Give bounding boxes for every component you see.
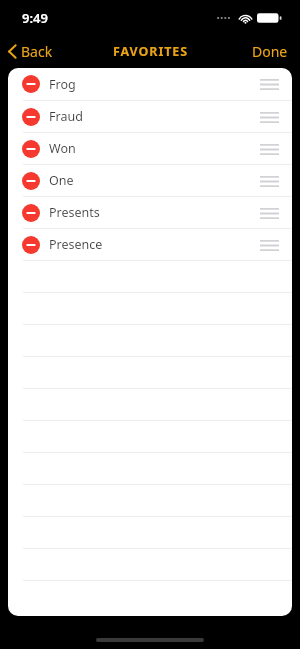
staticText: 9:49 (22, 9, 48, 27)
staticText: One (49, 172, 74, 189)
staticText: Done (252, 42, 288, 61)
staticText: Presents (49, 204, 100, 221)
button[interactable]: Remove Presence (22, 236, 40, 254)
button[interactable]: Reorder Presents (255, 203, 283, 223)
button[interactable]: Reorder Won (255, 139, 283, 159)
button[interactable]: Remove Presents (22, 204, 40, 222)
button[interactable]: Remove Frog (22, 75, 40, 93)
button[interactable]: Reorder Presence (255, 235, 283, 255)
staticText: Frog (49, 76, 76, 93)
button[interactable]: Remove Won (22, 140, 40, 158)
button[interactable]: Remove One (8, 165, 292, 196)
button[interactable]: Remove Fraud (22, 108, 40, 126)
button[interactable]: Remove Won (8, 133, 292, 164)
button[interactable]: Reorder Fraud (255, 107, 283, 127)
staticText: FAVORITES (113, 43, 188, 60)
staticText: Presence (49, 236, 103, 253)
button[interactable]: Remove One (22, 172, 40, 190)
staticText: Back (21, 42, 53, 61)
button[interactable]: Reorder One (255, 171, 283, 191)
button[interactable]: Back (0, 38, 63, 65)
button[interactable]: Remove Presents (8, 197, 292, 228)
button[interactable]: Remove Presence (8, 229, 292, 260)
button[interactable]: Reorder Frog (255, 74, 283, 94)
staticText: Fraud (49, 108, 83, 125)
button[interactable]: Remove Frog (8, 68, 292, 100)
button[interactable]: Remove Fraud (8, 101, 292, 132)
button[interactable]: Done (240, 38, 300, 65)
staticText: Won (49, 140, 76, 157)
